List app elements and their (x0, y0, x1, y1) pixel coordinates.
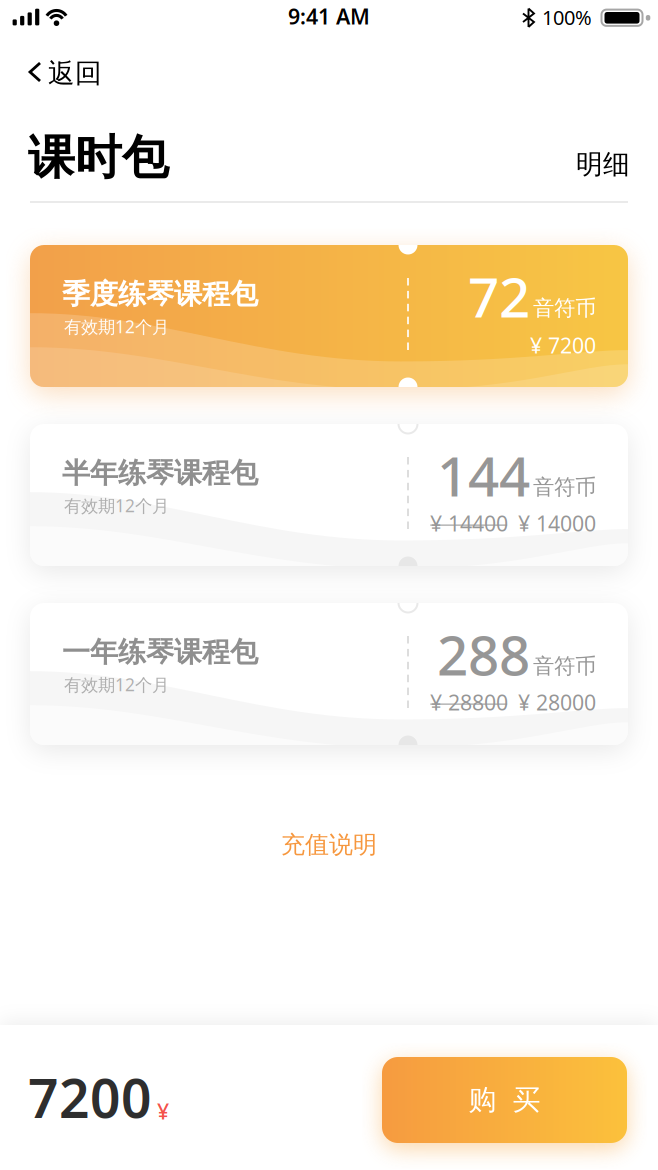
staticText: 明细 (576, 148, 630, 181)
button[interactable]: 返回 (28, 57, 108, 89)
staticText: 9:41 AM (288, 2, 370, 30)
staticText: 购 买 (468, 1083, 540, 1117)
staticText: ¥ 28000 (518, 688, 596, 716)
staticText: 音符币 (533, 474, 596, 500)
button[interactable]: 购 买 (382, 1057, 627, 1143)
staticText: 课时包 (28, 129, 169, 186)
button[interactable]: 充值说明 (0, 830, 658, 859)
staticText: 充值说明 (281, 830, 377, 859)
staticText: 有效期12个月 (64, 673, 169, 696)
staticText: 返回 (48, 57, 102, 90)
staticText: 288 (437, 618, 530, 691)
staticText: 半年练琴课程包 (62, 456, 258, 490)
staticText: ¥ 14400 (430, 509, 508, 537)
staticText: 有效期12个月 (64, 315, 169, 338)
staticText: ¥ 14000 (518, 509, 596, 537)
staticText: 音符币 (533, 653, 596, 679)
button[interactable]: 明细 (0, 148, 630, 181)
staticText: 季度练琴课程包 (62, 277, 258, 311)
button[interactable]: 季度练琴课程包 (30, 245, 628, 387)
staticText: 音符币 (533, 295, 596, 321)
staticText: 一年练琴课程包 (62, 635, 258, 669)
staticText: 100% (542, 4, 592, 31)
staticText: 7200 (28, 1062, 152, 1133)
staticText: 有效期12个月 (64, 494, 169, 517)
staticText: 72 (468, 260, 530, 333)
staticText: ¥ 28800 (430, 688, 508, 716)
staticText: ¥ 7200 (530, 331, 596, 359)
button[interactable]: 一年练琴课程包 (30, 603, 628, 745)
button[interactable]: 半年练琴课程包 (30, 424, 628, 566)
staticText: ¥ (157, 1097, 169, 1125)
staticText: 144 (437, 439, 530, 512)
